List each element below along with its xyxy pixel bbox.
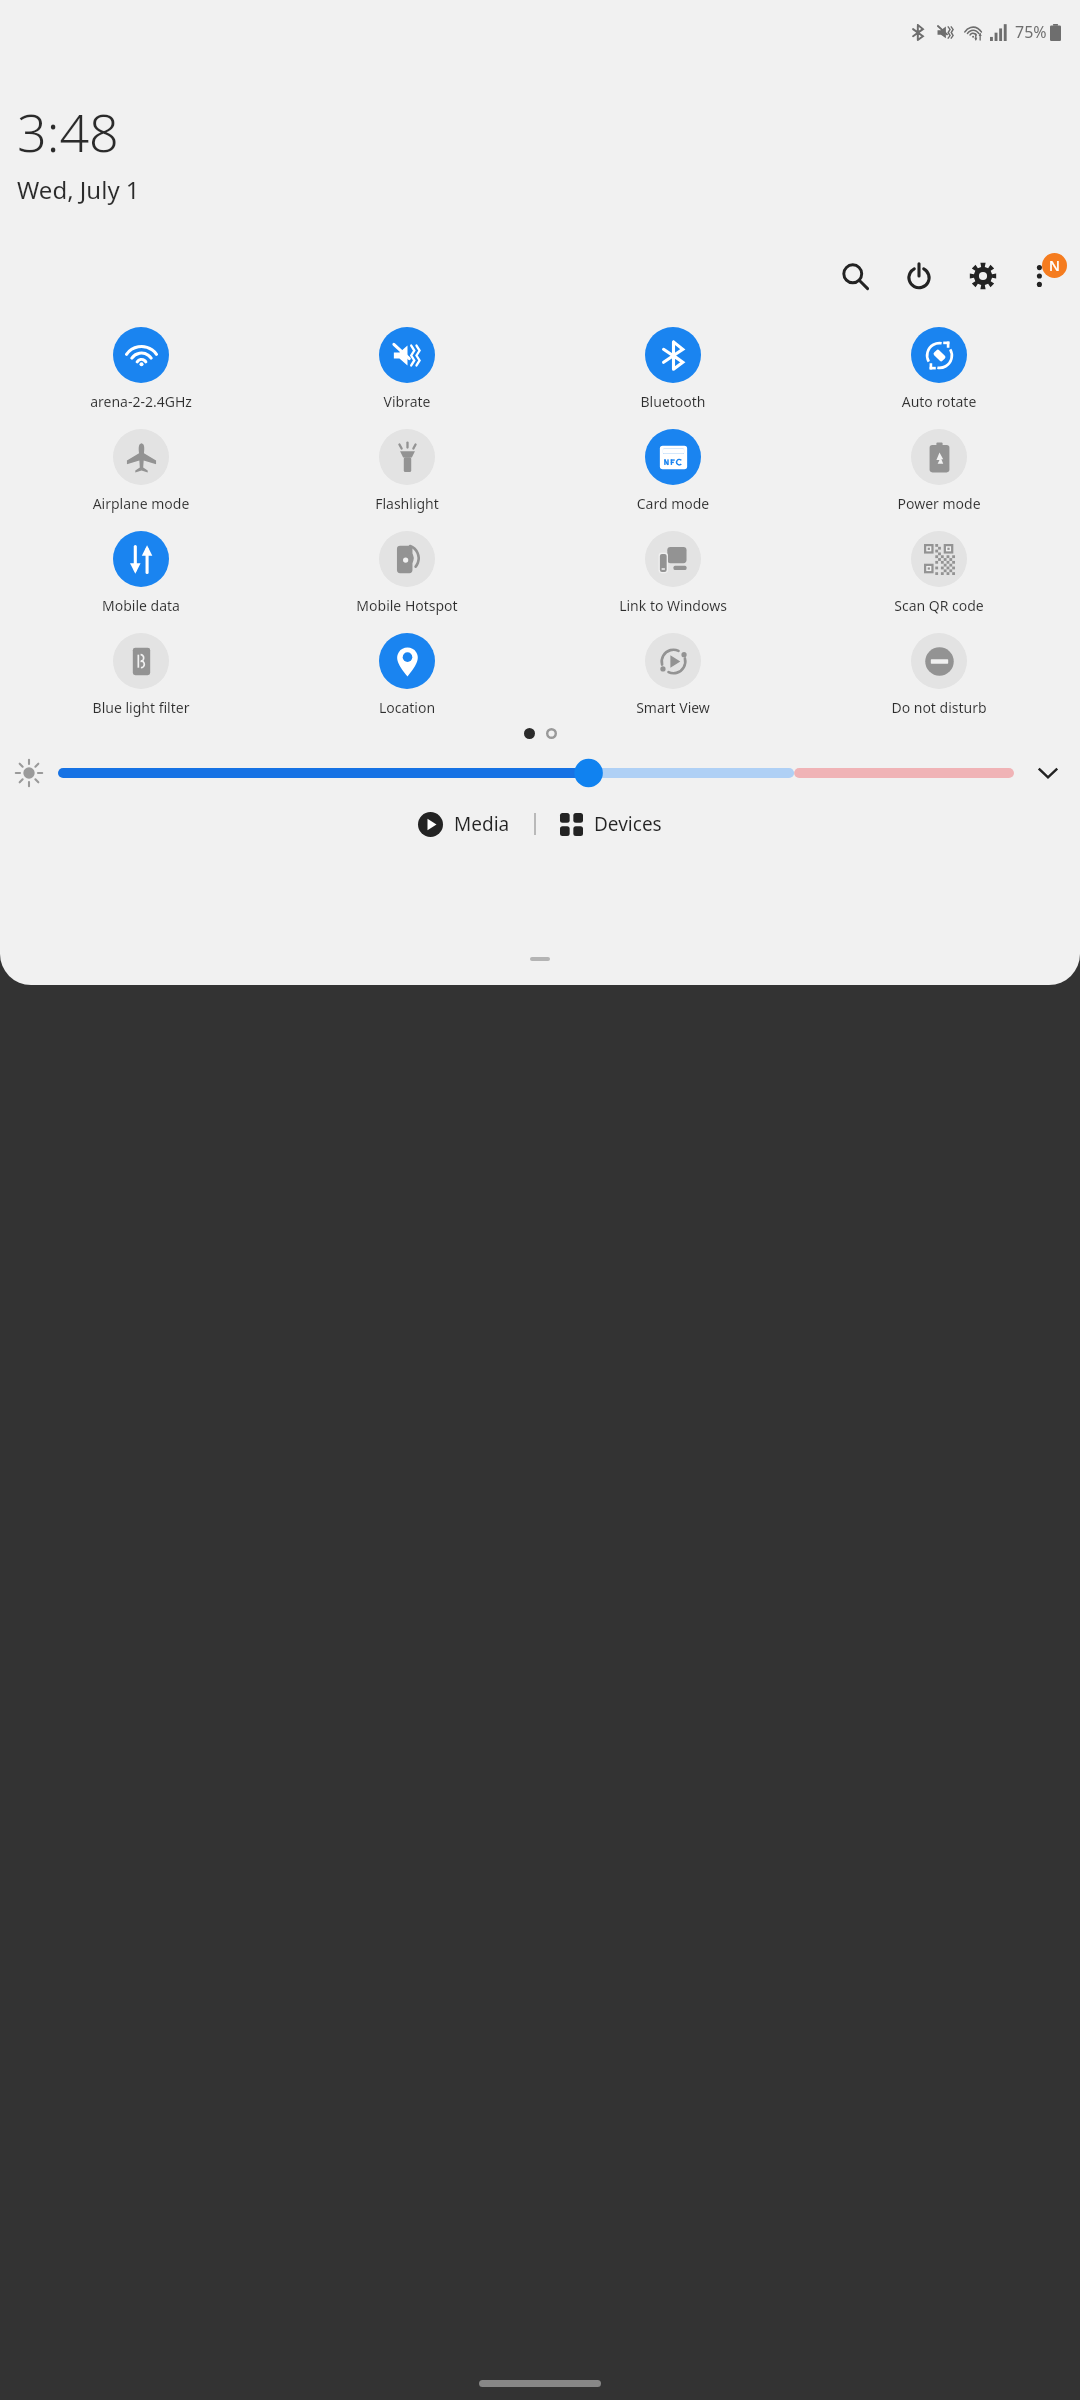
staticText: N (1049, 256, 1060, 275)
button[interactable]: Search (828, 249, 882, 303)
button[interactable]: Power mode (806, 427, 1072, 515)
button[interactable]: arena-2-2.4GHz (8, 325, 274, 413)
button[interactable]: Mobile Hotspot (274, 529, 540, 617)
button[interactable]: More options (1016, 249, 1070, 303)
staticText: 3:48 (17, 96, 119, 167)
button[interactable]: Link to Windows (540, 529, 806, 617)
staticText: Vibrate (276, 392, 538, 411)
button[interactable]: Mobile data (8, 529, 274, 617)
staticText: Scan QR code (808, 596, 1070, 615)
staticText: Do not disturb (808, 698, 1070, 717)
button[interactable]: Card mode (540, 427, 806, 515)
button[interactable]: Airplane mode (8, 427, 274, 515)
button[interactable]: Flashlight (274, 427, 540, 515)
staticText: Power mode (808, 494, 1070, 513)
staticText: Media (454, 811, 510, 837)
staticText: Card mode (542, 494, 804, 513)
staticText: Flashlight (276, 494, 538, 513)
button[interactable]: Location (274, 631, 540, 719)
button[interactable]: Settings (956, 249, 1010, 303)
staticText: Wed, July 1 (17, 173, 140, 206)
staticText: Blue light filter (10, 698, 272, 717)
button[interactable]: Auto rotate (806, 325, 1072, 413)
button[interactable]: Bluetooth (540, 325, 806, 413)
button[interactable]: Expand brightness settings (1030, 755, 1066, 791)
button[interactable]: Vibrate (274, 325, 540, 413)
button[interactable]: Devices (552, 805, 670, 843)
button[interactable]: Media (410, 805, 518, 843)
staticText: 75% (1015, 21, 1047, 43)
staticText: Mobile data (10, 596, 272, 615)
button[interactable]: Do not disturb (806, 631, 1072, 719)
staticText: Smart View (542, 698, 804, 717)
button[interactable]: Power (892, 249, 946, 303)
staticText: Bluetooth (542, 392, 804, 411)
staticText: Auto rotate (808, 392, 1070, 411)
button[interactable]: Smart View (540, 631, 806, 719)
staticText: Location (276, 698, 538, 717)
button[interactable]: Scan QR code (806, 529, 1072, 617)
staticText: Link to Windows (542, 596, 804, 615)
staticText: Airplane mode (10, 494, 272, 513)
staticText: Devices (594, 811, 662, 837)
button[interactable]: Blue light filter (8, 631, 274, 719)
staticText: Mobile Hotspot (276, 596, 538, 615)
staticText: arena-2-2.4GHz (10, 392, 272, 411)
